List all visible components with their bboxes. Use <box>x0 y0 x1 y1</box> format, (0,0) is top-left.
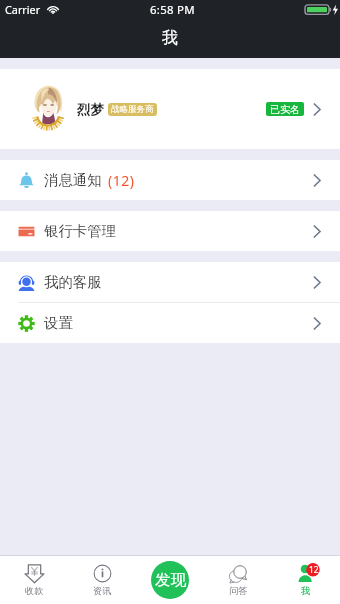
staticText: 问答 <box>229 585 248 597</box>
staticText: (12) <box>108 171 135 190</box>
staticText: 战略服务商 <box>111 104 154 115</box>
staticText: 银行卡管理 <box>44 222 116 240</box>
staticText: 烈梦 <box>77 101 104 118</box>
staticText: 我的客服 <box>44 273 102 291</box>
staticText: 我 <box>162 28 178 48</box>
staticText: 消息通知 <box>44 171 102 189</box>
button[interactable]: 我的客服 <box>0 262 340 302</box>
staticText: 发现 <box>155 570 186 590</box>
staticText: 我 <box>301 585 311 597</box>
button[interactable]: 银行卡管理 <box>0 211 340 251</box>
staticText: 资讯 <box>93 585 112 597</box>
button[interactable]: 设置 <box>0 303 340 343</box>
staticText: 已实名 <box>270 103 300 116</box>
staticText: 12 <box>309 564 319 576</box>
button[interactable]: 消息通知 <box>0 160 340 200</box>
staticText: 设置 <box>44 314 73 332</box>
staticText: 6:58 PM <box>150 2 195 18</box>
staticText: Carrier <box>5 2 41 17</box>
button[interactable]: 资讯 <box>68 564 136 597</box>
button[interactable]: 问答 <box>204 564 272 597</box>
staticText: 收款 <box>25 585 44 597</box>
button[interactable]: 发现 <box>151 561 189 599</box>
button[interactable]: 12 <box>272 564 340 597</box>
button[interactable]: 收款 <box>0 564 68 597</box>
button[interactable]: 烈梦 <box>0 69 340 149</box>
